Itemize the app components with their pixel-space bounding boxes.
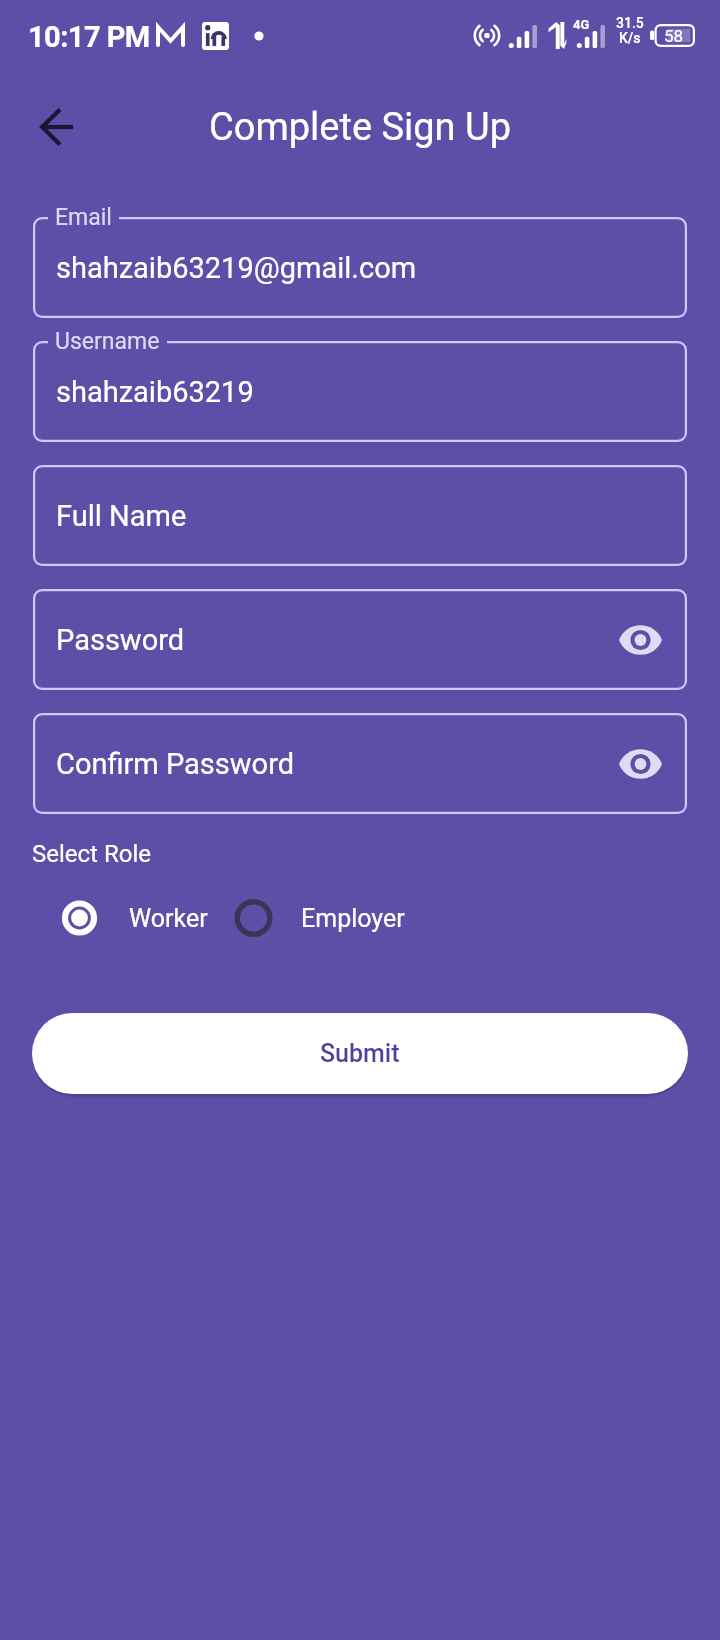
staticText: 10:17 PM xyxy=(28,20,150,54)
staticText: Confirm Password xyxy=(56,747,295,781)
staticText: Submit xyxy=(320,1039,400,1068)
button[interactable]: shahzaib63219@gmail.com xyxy=(33,217,687,318)
staticText: shahzaib63219@gmail.com xyxy=(56,251,417,285)
button[interactable]: Back xyxy=(30,101,82,153)
button[interactable]: Confirm Password xyxy=(33,713,687,814)
button[interactable]: Full Name xyxy=(33,465,687,566)
staticText: Worker xyxy=(129,904,208,933)
staticText: Select Role xyxy=(32,840,151,868)
staticText: shahzaib63219 xyxy=(56,375,254,409)
staticText: Full Name xyxy=(56,499,187,533)
staticText: Complete Sign Up xyxy=(209,105,511,150)
staticText: Email xyxy=(55,204,112,231)
staticText: 4G xyxy=(573,17,590,32)
staticText: K/s xyxy=(619,30,641,46)
button[interactable]: Submit xyxy=(32,1013,688,1094)
button[interactable]: Show password xyxy=(618,742,662,786)
button[interactable]: Worker xyxy=(55,896,208,940)
staticText: 31.5 xyxy=(616,15,644,31)
button[interactable]: shahzaib63219 xyxy=(33,341,687,442)
button[interactable]: Employer xyxy=(229,896,405,940)
staticText: Employer xyxy=(301,904,405,933)
staticText: Username xyxy=(55,328,160,355)
button[interactable]: Show password xyxy=(618,618,662,662)
staticText: Password xyxy=(56,623,185,657)
staticText: 58 xyxy=(664,26,684,46)
button[interactable]: Password xyxy=(33,589,687,690)
